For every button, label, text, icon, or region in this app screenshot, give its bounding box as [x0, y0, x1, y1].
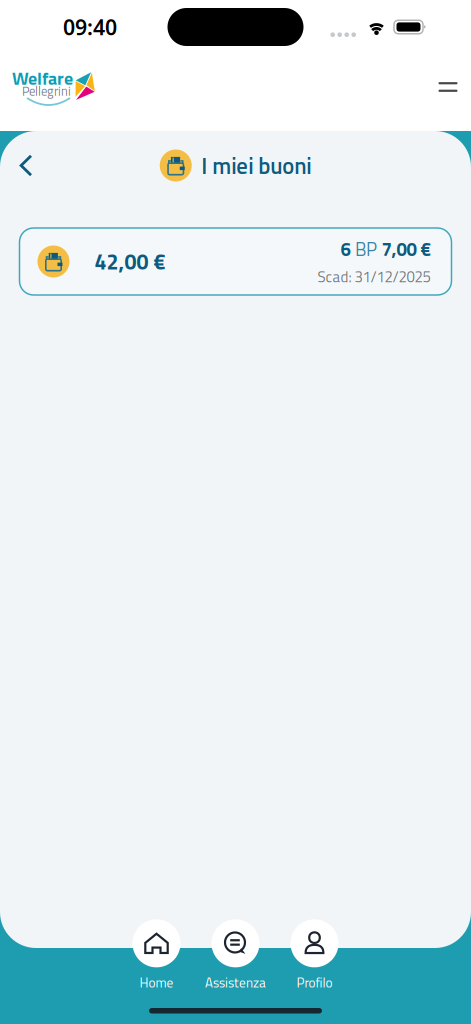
staticText: BP — [355, 235, 377, 263]
staticText: 6 — [340, 235, 350, 263]
staticText: 42,00 € — [94, 245, 165, 278]
staticText: Assistenza — [205, 972, 266, 993]
staticText: Pellegrini — [22, 81, 71, 101]
staticText: I miei buoni — [201, 148, 311, 183]
staticText: 09:40 — [63, 13, 117, 41]
staticText: Profilo — [296, 972, 332, 993]
button[interactable]: Assistenza — [196, 920, 275, 992]
staticText: Scad: 31/12/2025 — [317, 265, 430, 288]
staticText: Welfare — [12, 64, 73, 92]
button[interactable]: Indietro — [0, 141, 52, 189]
staticText: Home — [139, 972, 173, 993]
button[interactable]: Home — [117, 920, 196, 992]
button[interactable]: Menu — [426, 54, 470, 120]
button[interactable]: 42,00 € — [19, 228, 451, 295]
staticText: 7,00 € — [381, 235, 430, 263]
button[interactable]: Profilo — [275, 920, 354, 992]
